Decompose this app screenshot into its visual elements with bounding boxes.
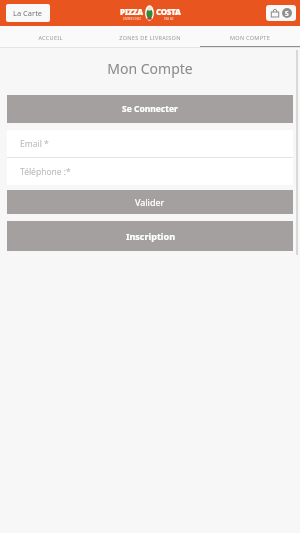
staticText: PIZZA (120, 6, 143, 17)
button[interactable]: La Carte (6, 4, 50, 22)
staticText: ZONES DE LIVRAISON (119, 34, 181, 41)
staticText: Valider (135, 196, 165, 208)
button[interactable]: MON COMPTE (200, 26, 300, 48)
button[interactable]: ACCUEIL (0, 26, 100, 48)
button[interactable]: Valider (7, 190, 293, 214)
staticText: MON COMPTE (230, 34, 270, 41)
staticText: Se Connecter (122, 103, 178, 115)
button[interactable]: Se Connecter (7, 95, 293, 123)
staticText: Email * (20, 138, 49, 150)
staticText: Inscription (126, 230, 175, 242)
staticText: 5 (285, 9, 289, 18)
staticText: COSTA (156, 6, 181, 17)
staticText: La Carte (13, 8, 43, 18)
staticText: LIVREE CHEZ (123, 17, 141, 21)
button[interactable]: Panier, 5 articles (266, 5, 296, 21)
staticText: Téléphone :* (20, 166, 71, 178)
staticText: ACCUEIL (38, 34, 63, 41)
button[interactable]: Inscription (7, 221, 293, 251)
staticText: Mon Compte (0, 59, 300, 78)
button[interactable]: Téléphone :* (7, 158, 293, 185)
button[interactable]: Email * (7, 130, 293, 157)
staticText: PAS AC (164, 17, 174, 21)
button[interactable]: ZONES DE LIVRAISON (100, 26, 200, 48)
